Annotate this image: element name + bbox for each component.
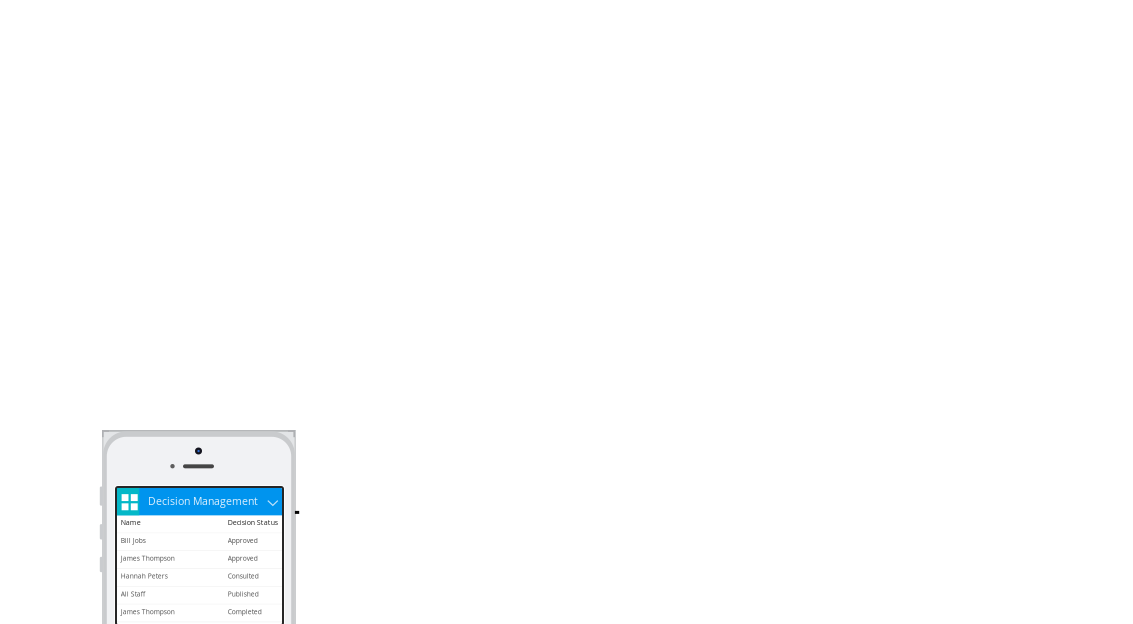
staticText: Decision Management [148, 494, 258, 508]
staticText: Consulted [228, 571, 259, 581]
staticText: Decision Status [228, 517, 278, 527]
staticText: All Staff [121, 589, 145, 598]
staticText: Approved [228, 536, 258, 545]
staticText: Approved [228, 554, 258, 563]
staticText: Published [228, 589, 259, 598]
staticText: James Thompson [121, 607, 175, 616]
button[interactable]: All Staff [117, 587, 282, 604]
button[interactable]: Bill Jobs [117, 533, 282, 551]
button[interactable]: Hannah Peters [117, 569, 282, 587]
staticText: Name [121, 517, 141, 527]
button[interactable]: James Thompson [117, 604, 282, 622]
button[interactable]: James Thompson [117, 551, 282, 569]
button[interactable]: Name [117, 516, 282, 533]
button[interactable]: Decision Management [148, 488, 268, 516]
staticText: James Thompson [121, 554, 175, 563]
staticText: Hannah Peters [121, 571, 168, 581]
staticText: Bill Jobs [121, 536, 146, 545]
button[interactable]: Show more [261, 488, 283, 516]
staticText: Completed [228, 607, 262, 616]
button[interactable]: Open apps menu [117, 488, 139, 516]
